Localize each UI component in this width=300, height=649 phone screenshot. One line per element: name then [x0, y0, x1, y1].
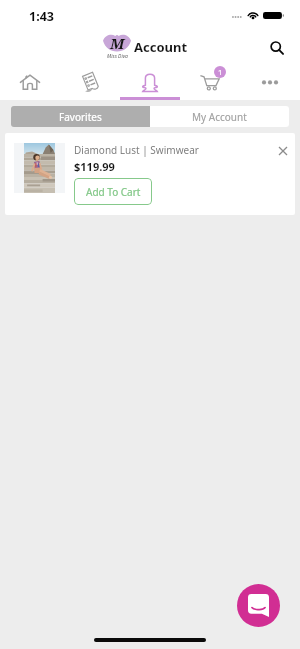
button[interactable]: More: [240, 64, 300, 100]
button[interactable]: Add To Cart: [74, 178, 152, 205]
staticText: My Account: [192, 110, 247, 124]
staticText: Account: [134, 38, 188, 56]
button[interactable]: Orders: [60, 64, 120, 100]
button[interactable]: My Account: [150, 106, 289, 127]
staticText: M: [110, 33, 125, 53]
staticText: 1: [218, 67, 223, 77]
staticText: Add To Cart: [86, 185, 141, 199]
staticText: $119.99: [74, 159, 115, 174]
button[interactable]: Cart: [180, 64, 240, 100]
button[interactable]: Account: [120, 64, 180, 100]
button[interactable]: Home: [0, 64, 60, 100]
button[interactable]: Favorites: [11, 106, 150, 127]
button[interactable]: Remove: [274, 142, 292, 160]
staticText: Diamond Lust | Swimwear: [74, 143, 199, 157]
staticText: Favorites: [59, 110, 102, 124]
staticText: Miss Diva: [107, 53, 128, 60]
staticText: 1:43: [29, 8, 54, 25]
button[interactable]: Search: [261, 32, 293, 64]
button[interactable]: Chat with us: [237, 584, 280, 627]
